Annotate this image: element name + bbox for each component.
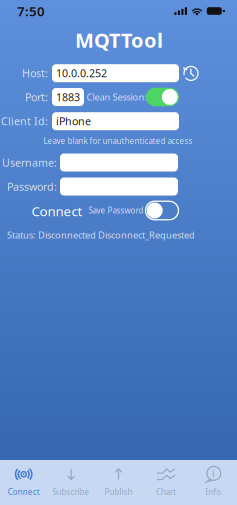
button[interactable]: Connect [0, 460, 47, 505]
staticText: Clean Session: [86, 91, 147, 103]
button[interactable]: i [190, 460, 237, 505]
staticText: Password: [7, 179, 57, 194]
button[interactable]: Recent hosts [183, 65, 199, 81]
staticText: Leave blank for unauthenticated access [43, 136, 192, 146]
staticText: i [212, 466, 215, 480]
staticText: iPhone [56, 114, 91, 128]
button[interactable]: Subscribe [47, 460, 95, 505]
staticText: Subscribe [53, 486, 90, 497]
staticText: Save Password [88, 205, 143, 216]
button[interactable]: Publish [95, 460, 142, 505]
staticText: MQTTool [75, 27, 163, 53]
staticText: Info [205, 486, 221, 497]
staticText: 1883 [56, 90, 80, 104]
staticText: Port: [25, 90, 48, 104]
staticText: Chart [156, 486, 176, 497]
staticText: Publish [104, 486, 132, 497]
staticText: Status: Disconnected Disconnect_Requeste… [7, 229, 195, 241]
staticText: Username: [2, 155, 57, 170]
button[interactable]: Chart [142, 460, 190, 505]
staticText: 10.0.0.252 [56, 66, 107, 80]
staticText: Client Id: [1, 114, 48, 128]
staticText: Connect [8, 486, 40, 497]
staticText: 7:50 [17, 2, 45, 20]
button[interactable]: Connect [26, 199, 87, 223]
staticText: Host: [22, 66, 48, 80]
button[interactable]: Save Password [145, 201, 178, 220]
staticText: Connect [31, 202, 82, 220]
button[interactable]: Clean Session [146, 88, 179, 106]
